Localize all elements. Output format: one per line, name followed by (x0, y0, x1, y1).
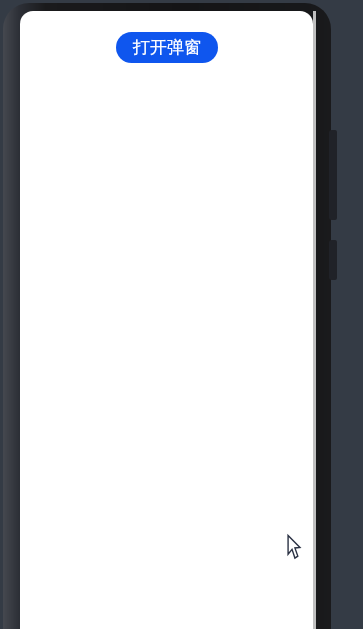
button[interactable]: 打开弹窗 (116, 32, 218, 63)
staticText: 打开弹窗 (133, 37, 201, 58)
